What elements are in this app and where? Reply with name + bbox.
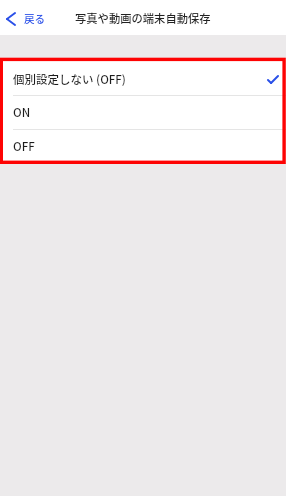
- staticText: 戻る: [24, 11, 46, 26]
- staticText: 個別設定しない (OFF): [13, 71, 126, 88]
- staticText: 写真や動画の端末自動保存: [75, 10, 211, 26]
- staticText: ON: [13, 104, 31, 121]
- button[interactable]: ON: [0, 96, 286, 129]
- button[interactable]: 個別設定しない (OFF): [0, 59, 286, 95]
- button[interactable]: OFF: [0, 130, 286, 163]
- button[interactable]: 戻る: [2, 5, 50, 30]
- other: Selected: [267, 75, 279, 84]
- staticText: OFF: [13, 138, 35, 155]
